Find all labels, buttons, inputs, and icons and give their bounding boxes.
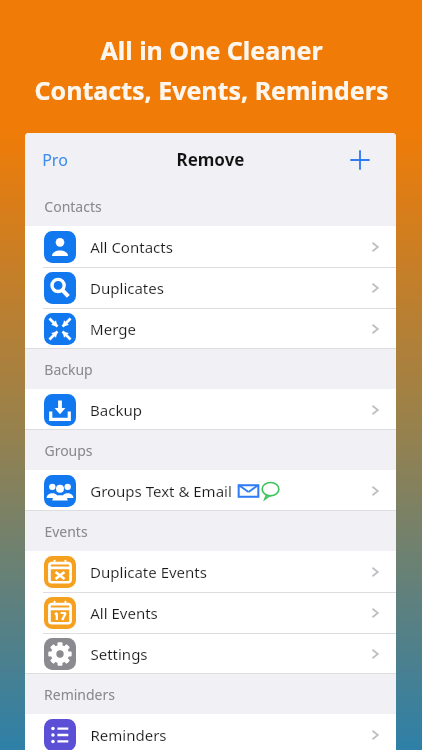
- staticText: All Contacts: [90, 237, 173, 257]
- staticText: Duplicates: [90, 278, 164, 298]
- button[interactable]: Duplicates: [25, 267, 396, 308]
- staticText: Contacts: [44, 197, 102, 216]
- button[interactable]: Add: [344, 144, 376, 176]
- button[interactable]: All Events: [25, 592, 396, 633]
- staticText: Remove: [176, 148, 245, 171]
- staticText: Duplicate Events: [90, 562, 207, 582]
- staticText: Reminders: [90, 725, 167, 745]
- staticText: All in One Cleaner: [100, 33, 323, 67]
- staticText: Events: [44, 522, 88, 541]
- button[interactable]: All Contacts: [25, 226, 396, 267]
- staticText: Contacts, Events, Reminders: [34, 73, 389, 107]
- staticText: Backup: [90, 400, 142, 420]
- button[interactable]: Backup: [25, 389, 396, 430]
- staticText: Merge: [90, 319, 136, 339]
- staticText: Backup: [44, 360, 93, 379]
- staticText: Pro: [42, 149, 68, 171]
- button[interactable]: Reminders: [25, 714, 396, 750]
- button[interactable]: Groups Text & Email: [25, 470, 396, 511]
- button[interactable]: Pro: [36, 143, 74, 177]
- button[interactable]: Settings: [25, 633, 396, 674]
- staticText: Reminders: [44, 685, 115, 704]
- button[interactable]: Merge: [25, 308, 396, 349]
- staticText: Settings: [90, 644, 148, 664]
- staticText: Groups: [44, 441, 93, 460]
- button[interactable]: Duplicate Events: [25, 551, 396, 592]
- staticText: Groups Text & Email: [90, 481, 232, 501]
- staticText: All Events: [90, 603, 158, 623]
